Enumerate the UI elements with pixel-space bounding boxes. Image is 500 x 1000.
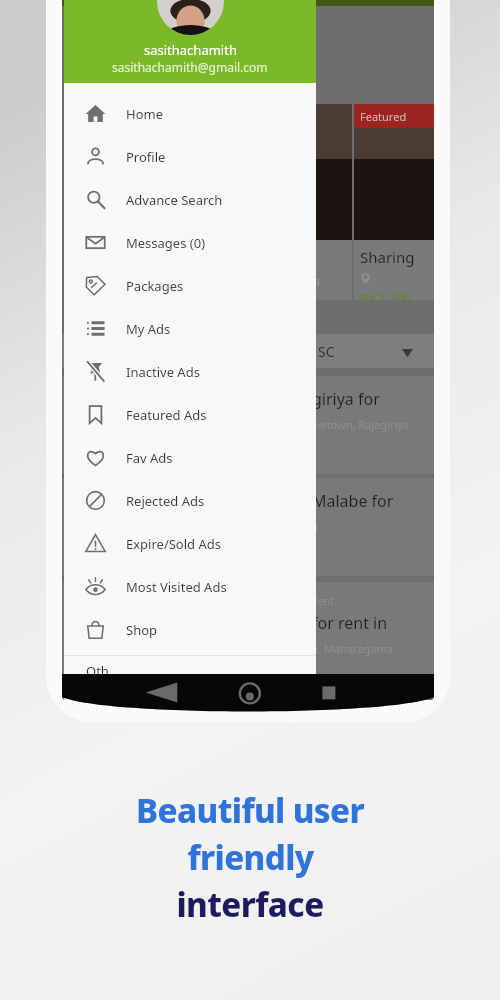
staticText: Sharing [360,247,415,267]
other: Expire/Sold Ads [64,533,126,554]
staticText: Rent [312,594,334,608]
staticText: ewtown, Rajagiriya [312,417,410,432]
staticText: SC [318,342,335,361]
staticText: a [312,519,319,534]
staticText: Featured [360,109,407,124]
button[interactable]: Home [64,92,316,135]
staticText: Advance Search [126,191,223,209]
other: Most Visited Ads [64,576,126,597]
other: Packages [64,275,126,296]
button[interactable]: Messages (0) [64,221,316,264]
staticText: a, Maharagama [312,641,393,656]
other: Advance Search [64,189,126,210]
button[interactable]: Featured Ads [64,393,316,436]
staticText: Rejected Ads [126,492,205,510]
staticText: interface [176,882,324,927]
staticText: Oth [86,662,109,680]
staticText: Shop [126,621,158,639]
staticText: ajagiriya [276,273,320,288]
button[interactable]: Packages [64,264,316,307]
other: Fav Ads [64,447,126,468]
staticText: Most Visited Ads [126,578,227,596]
other: My Ads [64,318,126,339]
button[interactable]: Inactive Ads [64,350,316,393]
staticText: Profile [126,148,166,166]
other: Shop [64,619,126,640]
staticText: Featured Ads [126,406,207,424]
other: Featured Ads [64,404,126,425]
staticText: Messages (0) [126,234,206,252]
staticText: friendly [187,835,314,880]
staticText: Fav Ads [126,449,173,467]
other: Messages (0) [64,232,126,253]
button[interactable]: Rejected Ads [64,479,316,522]
staticText: Rs 7,500 [360,289,412,300]
staticText: My Ads [126,320,171,338]
button[interactable]: Fav Ads [64,436,316,479]
other: Rejected Ads [64,490,126,511]
staticText: sasithachamith [144,41,237,59]
staticText: Expire/Sold Ads [126,535,221,553]
staticText: Malabe for [312,490,394,512]
button[interactable]: Profile [64,135,316,178]
button[interactable]: Most Visited Ads [64,565,316,608]
staticText: sasithachamith@gmail.com [112,59,268,75]
button[interactable]: My Ads [64,307,316,350]
staticText: for rent in [312,612,388,634]
button[interactable]: Advance Search [64,178,316,221]
other: Inactive Ads [64,361,126,382]
staticText: Packages [126,277,184,295]
button[interactable]: Expire/Sold Ads [64,522,316,565]
staticText: Home [126,105,163,123]
staticText: Inactive Ads [126,363,200,381]
other: Home [64,103,126,124]
staticText: giriya for [312,388,380,410]
other: Profile [64,146,126,167]
staticText: Beautiful user [136,788,364,833]
button[interactable]: Shop [64,608,316,651]
